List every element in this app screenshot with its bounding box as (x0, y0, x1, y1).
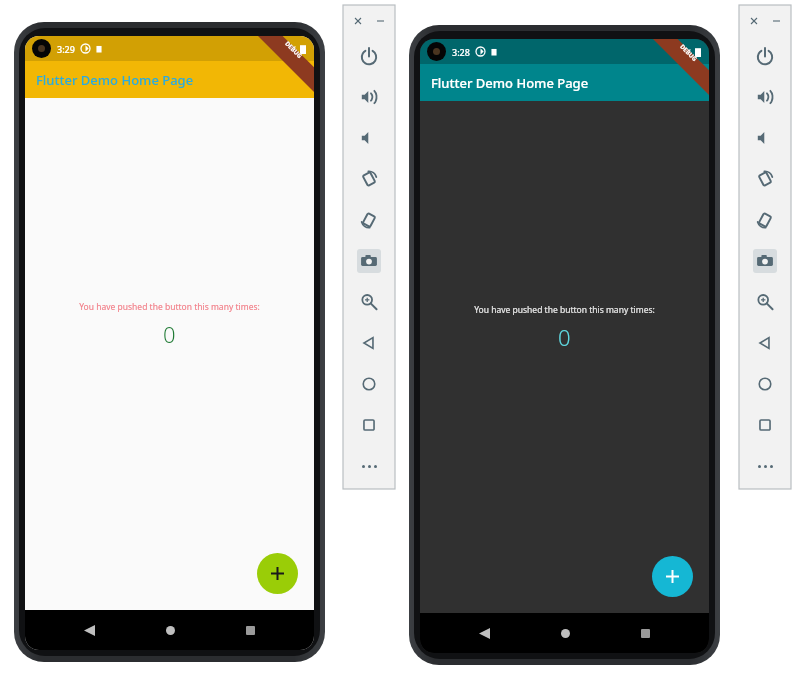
button[interactable]: Rotate right (343, 199, 395, 240)
button[interactable]: Back (343, 322, 395, 363)
button[interactable]: Volume up (343, 76, 395, 117)
button[interactable]: Screenshot (739, 240, 791, 281)
button[interactable]: Minimize (373, 14, 387, 28)
button[interactable]: Recents (628, 616, 662, 650)
button[interactable]: Overview (343, 404, 395, 445)
button[interactable]: Back (467, 616, 501, 650)
staticText: 0 (558, 322, 571, 352)
button[interactable]: More (356, 453, 382, 479)
button[interactable]: Overview (739, 404, 791, 445)
staticText: You have pushed the button this many tim… (474, 304, 655, 316)
button[interactable]: Volume up (739, 76, 791, 117)
button[interactable]: Home (343, 363, 395, 404)
staticText: You have pushed the button this many tim… (79, 301, 260, 313)
button[interactable]: Rotate left (739, 158, 791, 199)
button[interactable]: More (752, 453, 778, 479)
button[interactable]: Screenshot (343, 240, 395, 281)
staticText: DEBUG (678, 43, 699, 63)
button[interactable]: Power (739, 35, 791, 76)
button[interactable]: Increment (652, 556, 693, 597)
button[interactable]: Close (747, 14, 761, 28)
button[interactable]: Volume down (343, 117, 395, 158)
button[interactable]: Increment (257, 553, 298, 594)
button[interactable]: Close (351, 14, 365, 28)
button[interactable]: Rotate left (343, 158, 395, 199)
button[interactable]: Zoom (343, 281, 395, 322)
staticText: Flutter Demo Home Page (36, 71, 194, 89)
staticText: 3:29 (57, 43, 75, 55)
button[interactable]: Zoom (739, 281, 791, 322)
button[interactable]: Minimize (769, 14, 783, 28)
button[interactable]: Flutter Demo Home Page (420, 64, 709, 101)
button[interactable]: Recents (233, 613, 267, 647)
button[interactable]: Power (343, 35, 395, 76)
button[interactable]: Home (548, 616, 582, 650)
button[interactable]: Back (72, 613, 106, 647)
button[interactable]: Flutter Demo Home Page (25, 61, 314, 98)
button[interactable]: Rotate right (739, 199, 791, 240)
staticText: DEBUG (283, 40, 304, 60)
button[interactable]: Volume down (739, 117, 791, 158)
staticText: 0 (163, 319, 176, 349)
staticText: Flutter Demo Home Page (431, 74, 589, 92)
button[interactable]: Home (153, 613, 187, 647)
button[interactable]: Back (739, 322, 791, 363)
staticText: 3:28 (452, 46, 470, 58)
button[interactable]: Home (739, 363, 791, 404)
